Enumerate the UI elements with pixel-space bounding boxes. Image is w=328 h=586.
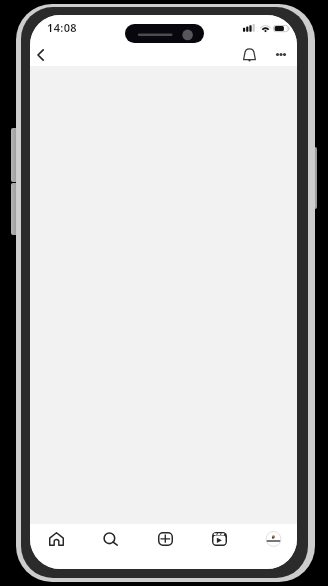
button[interactable]: Create — [149, 523, 181, 555]
button[interactable]: Profile — [257, 523, 289, 555]
button[interactable]: More options — [267, 40, 295, 68]
button[interactable]: Back — [30, 41, 54, 69]
button[interactable]: Reels — [203, 523, 235, 555]
button[interactable]: Home — [40, 523, 72, 555]
button[interactable]: Notifications — [235, 41, 263, 69]
staticText: 14:08 — [47, 20, 77, 35]
button[interactable]: Search — [94, 523, 126, 555]
